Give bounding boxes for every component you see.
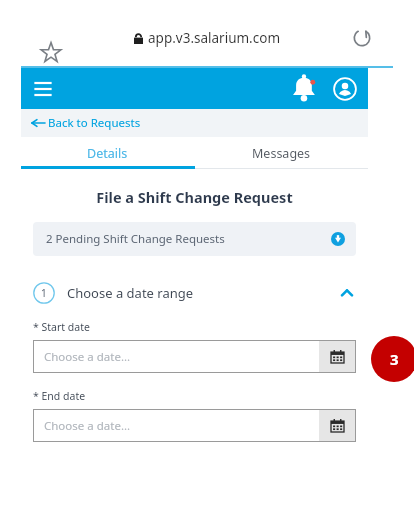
button[interactable]: Account bbox=[332, 76, 358, 102]
staticText: Back to Requests bbox=[48, 115, 141, 131]
staticText: * Start date bbox=[33, 320, 90, 334]
staticText: 3 bbox=[390, 349, 399, 369]
button[interactable]: Step 3 badge bbox=[371, 336, 414, 382]
button[interactable]: Details bbox=[21, 137, 194, 169]
staticText: 1 bbox=[41, 286, 47, 300]
staticText: Choose a date... bbox=[44, 349, 131, 365]
staticText: 2 Pending Shift Change Requests bbox=[46, 231, 225, 247]
button[interactable]: Messages bbox=[194, 137, 368, 169]
button[interactable]: 1 bbox=[33, 280, 356, 306]
staticText: File a Shift Change Request bbox=[96, 187, 293, 207]
staticText: Details bbox=[87, 145, 128, 162]
button[interactable]: Back to Requests bbox=[21, 109, 368, 137]
button[interactable]: Reload bbox=[350, 26, 374, 50]
staticText: Choose a date range bbox=[67, 284, 194, 302]
staticText: Choose a date... bbox=[44, 418, 131, 434]
button[interactable]: Notifications bbox=[292, 76, 318, 102]
button[interactable]: Choose a date... bbox=[33, 340, 356, 373]
button[interactable]: Bookmark bbox=[38, 40, 64, 66]
staticText: * End date bbox=[33, 389, 86, 403]
staticText: Messages bbox=[252, 145, 311, 162]
staticText: app.v3.salarium.com bbox=[148, 29, 281, 47]
button[interactable]: Menu bbox=[31, 77, 55, 101]
button[interactable]: 2 Pending Shift Change Requests bbox=[33, 222, 356, 256]
button[interactable]: Choose a date... bbox=[33, 409, 356, 442]
